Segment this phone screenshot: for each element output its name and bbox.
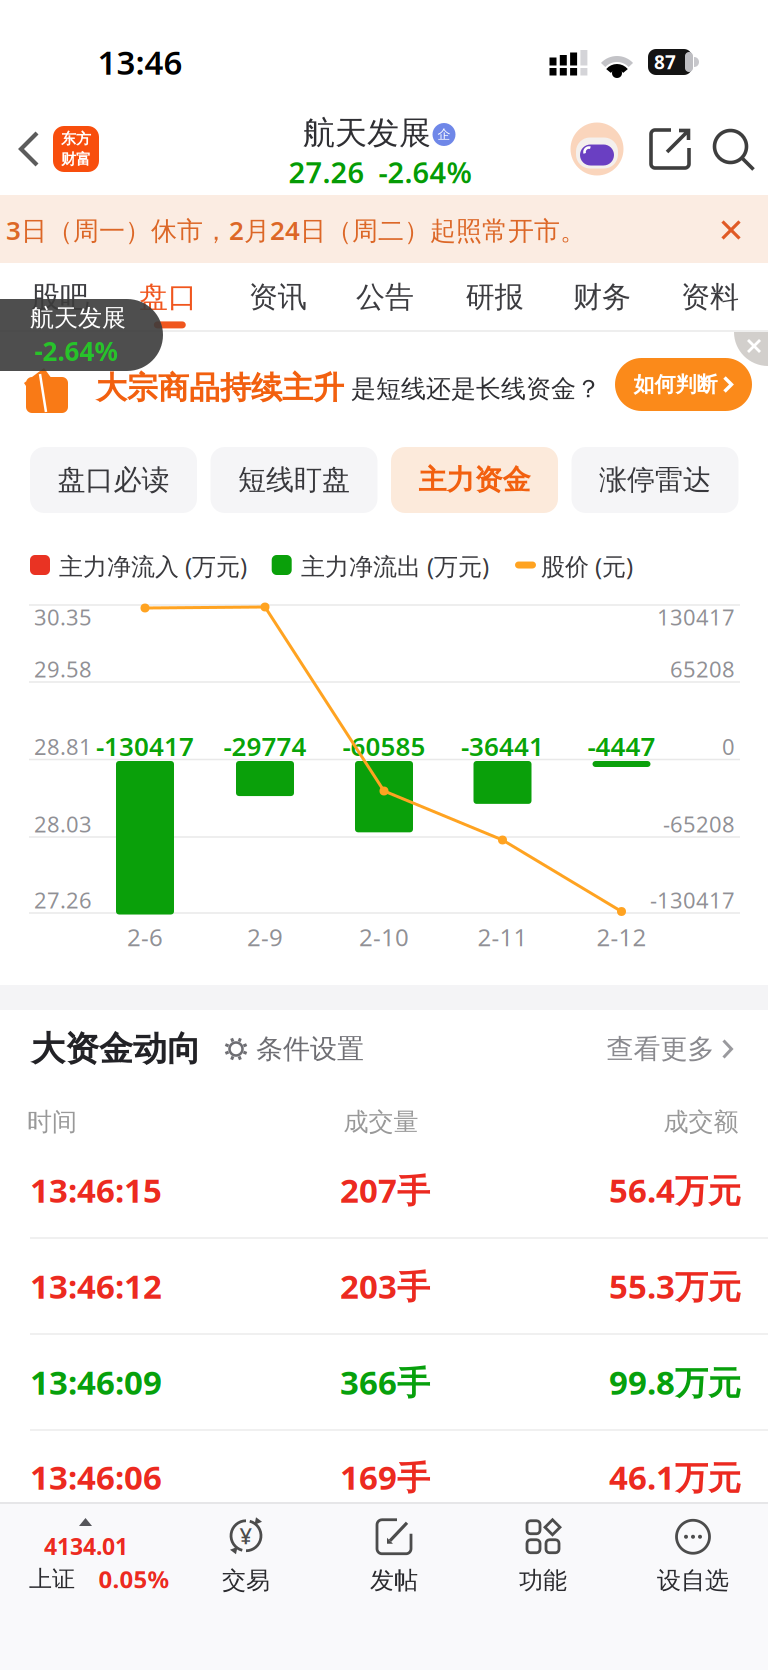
staticText: 2-6 [127, 921, 163, 953]
button[interactable]: 4134.01 [0, 1509, 178, 1605]
staticText: -36441 [461, 729, 544, 763]
staticText: -2.64% [34, 334, 117, 368]
staticText: -60585 [342, 729, 425, 763]
staticText: 2-11 [477, 921, 527, 953]
button[interactable]: 条件设置 [222, 1032, 364, 1066]
staticText: 99.8万元 [609, 1360, 741, 1404]
staticText: 条件设置 [256, 1032, 364, 1066]
button[interactable]: 主力资金 [391, 447, 558, 513]
staticText: 2-12 [596, 921, 646, 953]
staticText: 查看更多 [606, 1032, 714, 1066]
button[interactable]: 设自选 [626, 1508, 760, 1604]
staticText: 主力资金 [418, 463, 530, 497]
staticText: 股价 (元) [541, 550, 633, 582]
staticText: 资讯 [249, 279, 307, 315]
button[interactable]: ¥ [179, 1508, 313, 1604]
button[interactable]: 盘口必读 [30, 447, 197, 513]
staticText: 主力净流入 (万元) [59, 550, 247, 582]
button[interactable]: Back [17, 129, 41, 169]
staticText: 29.58 [34, 654, 92, 684]
button[interactable]: 发帖 [327, 1508, 461, 1604]
staticText: -130417 [650, 885, 735, 915]
button[interactable]: Search [710, 126, 757, 173]
button[interactable]: 关闭公告 [717, 216, 744, 243]
staticText: 成交量 [343, 1107, 418, 1137]
staticText: 企 [437, 126, 450, 142]
button[interactable]: 财务 [558, 270, 646, 324]
staticText: 13:46 [97, 40, 182, 84]
staticText: 207手 [340, 1168, 430, 1212]
button[interactable]: 盘口 [124, 270, 212, 324]
staticText: 财务 [573, 279, 631, 315]
staticText: 13:46:12 [30, 1264, 162, 1308]
staticText: ¥ [239, 1521, 252, 1550]
button[interactable]: 股吧 [16, 270, 104, 324]
staticText: 27.26 [34, 885, 92, 915]
staticText: 4134.01 [44, 1531, 128, 1561]
staticText: 资料 [681, 279, 739, 315]
button[interactable]: 功能 [476, 1508, 610, 1604]
staticText: 169手 [340, 1455, 430, 1499]
staticText: 30.35 [34, 602, 92, 632]
staticText: 股吧 [31, 279, 89, 315]
staticText: 大资金动向 [31, 1028, 201, 1070]
staticText: 130417 [657, 602, 735, 632]
staticText: 56.4万元 [609, 1168, 741, 1212]
staticText: 交易 [222, 1566, 270, 1595]
button[interactable]: 大宗商品持续主升 [0, 332, 768, 437]
staticText: 成交额 [663, 1107, 738, 1137]
staticText: 时间 [27, 1107, 77, 1137]
button[interactable]: 资料 [666, 270, 754, 324]
staticText: 大宗商品持续主升 [96, 369, 344, 407]
staticText: 公告 [356, 279, 414, 315]
staticText: 涨停雷达 [599, 463, 711, 497]
staticText: 2-10 [359, 921, 409, 953]
staticText: 366手 [340, 1360, 430, 1404]
staticText: 发帖 [370, 1566, 418, 1595]
button[interactable]: 东方财富 [53, 126, 99, 172]
staticText: 上证 [29, 1565, 75, 1593]
staticText: 13:46:15 [30, 1168, 162, 1212]
staticText: 27.26 [288, 153, 364, 191]
staticText: -4447 [587, 729, 655, 763]
staticText: 航天发展 [30, 303, 126, 333]
staticText: 203手 [340, 1264, 430, 1308]
staticText: 东方 [61, 130, 91, 148]
staticText: 13:46:09 [30, 1360, 162, 1404]
staticText: 55.3万元 [609, 1264, 741, 1308]
button[interactable]: 查看更多 [606, 1032, 733, 1066]
staticText: 13:46:06 [30, 1455, 162, 1499]
button[interactable]: 公告 [341, 270, 429, 324]
staticText: 短线盯盘 [238, 463, 350, 497]
button[interactable]: 资讯 [234, 270, 322, 324]
staticText: 财富 [61, 150, 91, 168]
staticText: 功能 [519, 1566, 567, 1595]
button[interactable]: 短线盯盘 [210, 447, 377, 513]
staticText: 0 [722, 732, 735, 761]
staticText: 航天发展 [303, 113, 431, 153]
staticText: 87 [654, 49, 676, 75]
staticText: 如何判断 [633, 372, 717, 397]
staticText: 0.05% [98, 1563, 169, 1595]
button[interactable]: 研报 [451, 270, 539, 324]
staticText: 3日（周一）休市，2月24日（周二）起照常开市。 [6, 213, 586, 247]
staticText: -130417 [96, 729, 194, 763]
button[interactable]: 关闭广告 [732, 332, 768, 368]
staticText: 65208 [670, 654, 735, 684]
staticText: 28.03 [34, 809, 92, 839]
staticText: 设自选 [657, 1566, 729, 1595]
button[interactable]: 涨停雷达 [571, 447, 738, 513]
staticText: 是短线还是长线资金？ [351, 374, 601, 404]
staticText: 盘口必读 [57, 463, 169, 497]
staticText: -29774 [223, 729, 306, 763]
staticText: 研报 [466, 279, 524, 315]
staticText: 2-9 [247, 921, 283, 953]
staticText: 46.1万元 [609, 1455, 741, 1499]
staticText: -2.64% [378, 153, 471, 191]
button[interactable]: AI助手 [570, 122, 623, 175]
staticText: -65208 [663, 809, 735, 839]
staticText: 主力净流出 (万元) [301, 550, 489, 582]
button[interactable]: Share [647, 126, 693, 172]
staticText: 盘口 [139, 279, 197, 315]
staticText: 28.81 [34, 732, 92, 761]
